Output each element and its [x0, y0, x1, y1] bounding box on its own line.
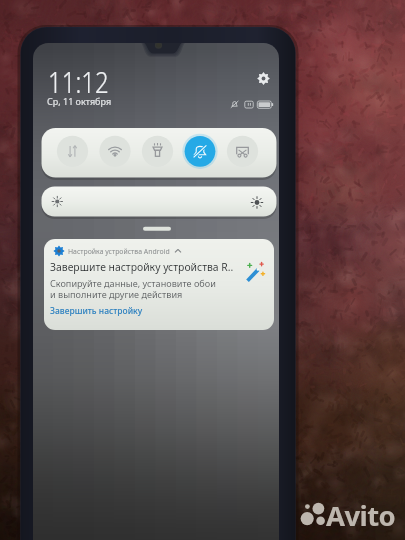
staticText: Ср, 11 октября	[47, 95, 112, 107]
button[interactable]: Завершить настройку	[50, 305, 143, 317]
staticText: Завершить настройку	[50, 305, 143, 317]
staticText: Скопируйте данные, установите обои и вып…	[50, 277, 216, 301]
button[interactable]: Settings	[256, 71, 271, 86]
staticText: Настройка устройства Android	[68, 247, 170, 256]
button[interactable]: Настройка устройства Android	[44, 239, 274, 330]
staticText: Avito	[326, 497, 396, 534]
staticText: Завершите настройку устройства R..	[50, 260, 234, 274]
staticText: 11:12	[48, 61, 109, 102]
